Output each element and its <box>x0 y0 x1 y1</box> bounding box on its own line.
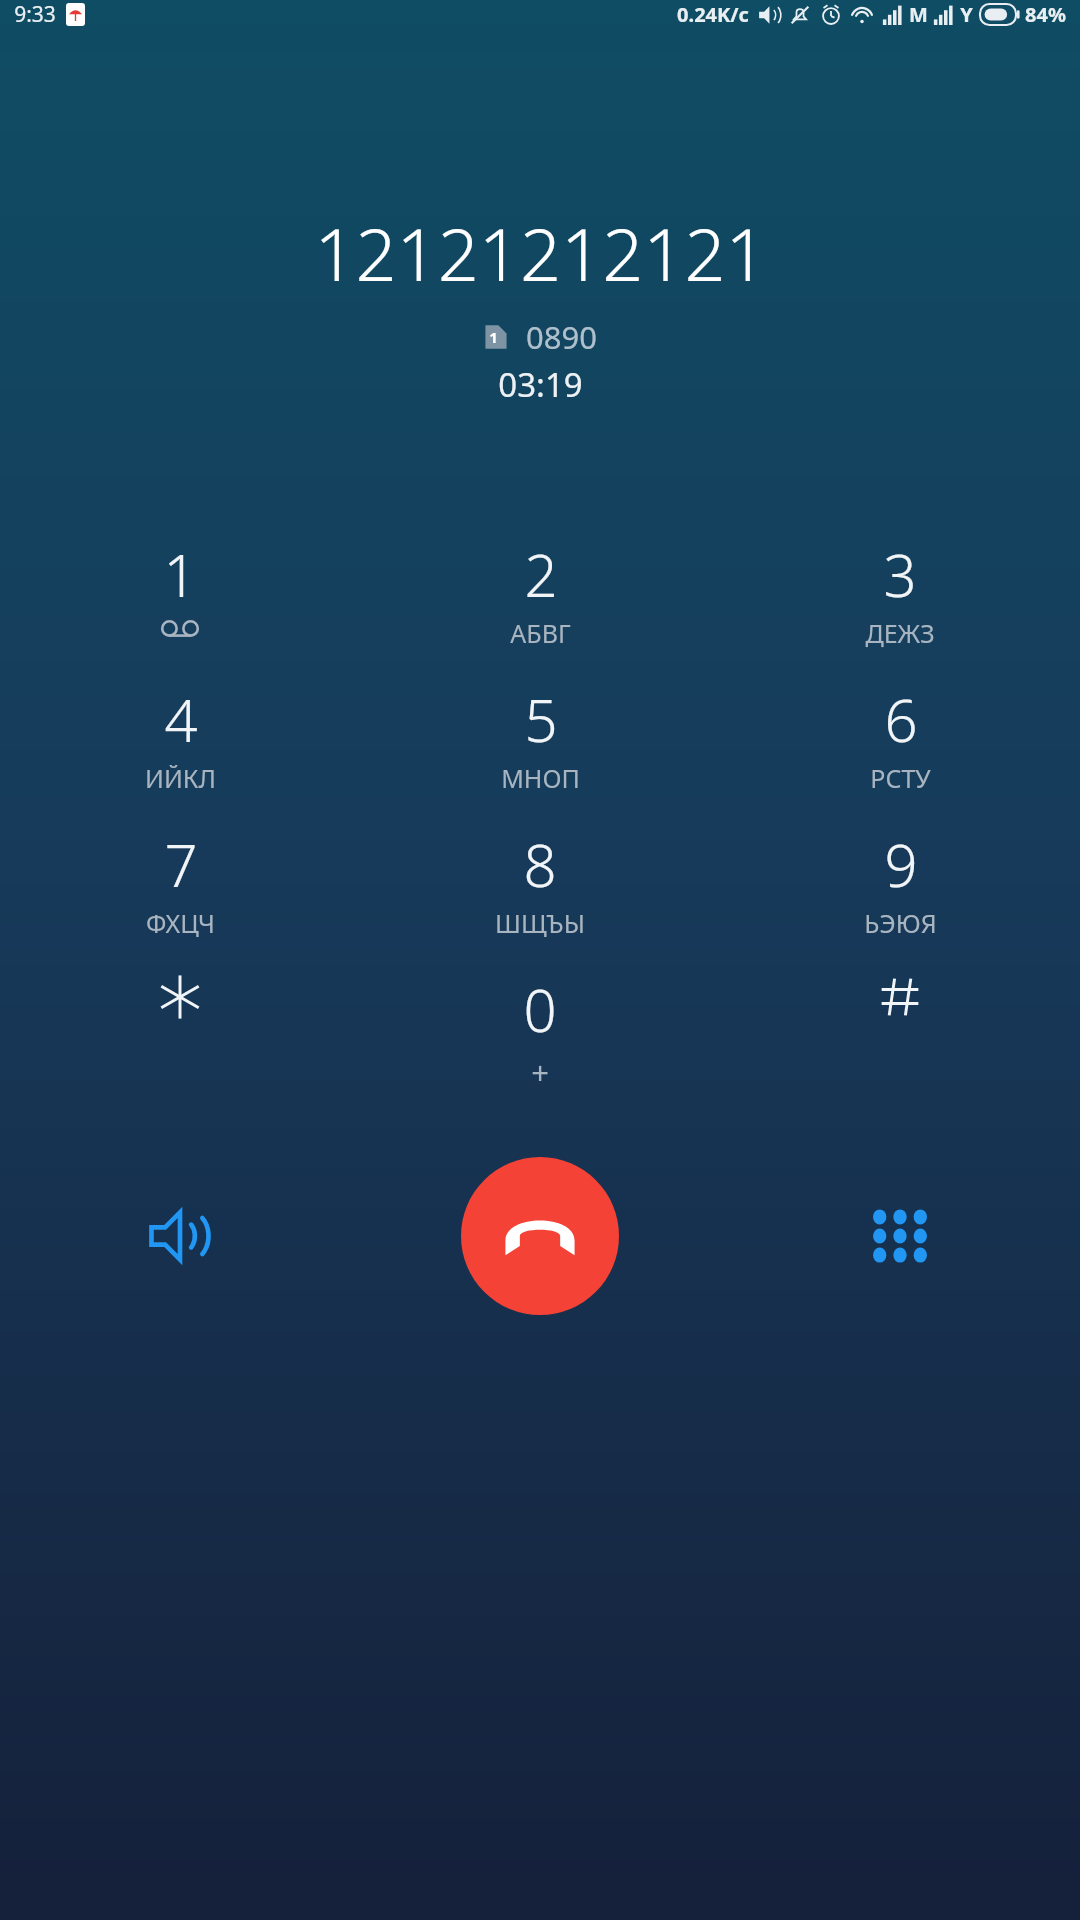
staticText: 0 <box>523 970 557 1049</box>
button[interactable]: Star <box>0 970 360 1046</box>
staticText: ДЕЖЗ <box>865 616 935 650</box>
staticText: 0890 <box>526 316 597 358</box>
button[interactable]: 4 <box>0 680 360 795</box>
staticText: 2 <box>524 535 558 614</box>
button[interactable]: 6 <box>720 680 1080 795</box>
staticText: Y <box>960 1 973 28</box>
button[interactable]: End call <box>461 1157 619 1315</box>
button[interactable]: 3 <box>720 535 1080 650</box>
staticText: АБВГ <box>510 616 571 650</box>
staticText: РСТУ <box>870 761 931 795</box>
staticText: ЬЭЮЯ <box>864 906 937 940</box>
staticText: 9:33 <box>14 0 56 29</box>
button[interactable]: 5 <box>360 680 720 795</box>
staticText: 03:19 <box>498 362 583 407</box>
staticText: M <box>909 1 928 28</box>
staticText: 7 <box>164 825 198 904</box>
staticText: 1 <box>489 327 498 347</box>
button[interactable]: Speaker <box>0 1136 360 1336</box>
button[interactable]: 1 <box>0 535 360 638</box>
button[interactable]: 0 <box>360 970 720 1093</box>
staticText: 12121212121 <box>314 204 767 302</box>
staticText: 4 <box>164 680 198 759</box>
button[interactable]: 2 <box>360 535 720 650</box>
staticText: 1 <box>163 535 197 614</box>
staticText: ШЩЪЫ <box>495 906 585 940</box>
staticText: 5 <box>524 680 558 759</box>
button[interactable]: Pound <box>720 970 1080 1046</box>
button[interactable]: 9 <box>720 825 1080 940</box>
button[interactable]: Keypad <box>720 1136 1080 1336</box>
staticText: ФХЦЧ <box>146 906 215 940</box>
button[interactable]: 8 <box>360 825 720 940</box>
staticText: 6 <box>884 680 918 759</box>
button[interactable]: 7 <box>0 825 360 940</box>
staticText: + <box>531 1051 549 1093</box>
staticText: 84% <box>1025 1 1066 28</box>
staticText: МНОП <box>501 761 580 795</box>
staticText: 8 <box>523 825 557 904</box>
staticText: 9 <box>884 825 918 904</box>
staticText: 0.24K/c <box>677 1 749 28</box>
staticText: 3 <box>883 535 917 614</box>
staticText: ИЙКЛ <box>145 761 216 795</box>
